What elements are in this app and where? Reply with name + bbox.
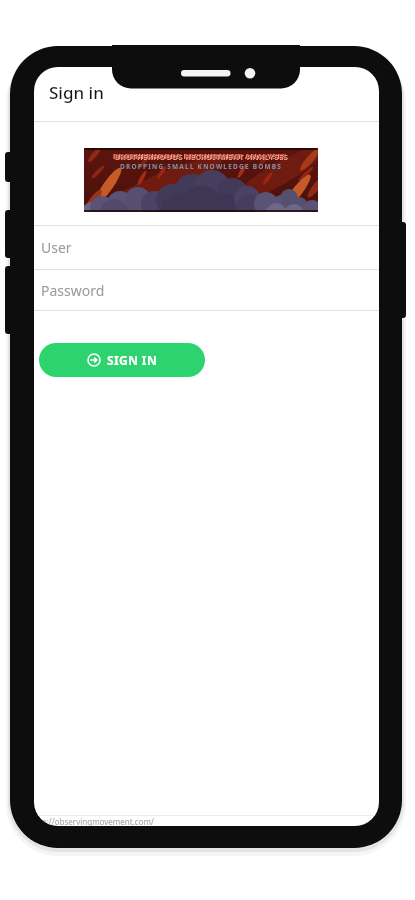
staticText: BROTHERHOODS RECRUITMENT ANALYSES xyxy=(115,152,289,162)
staticText: Sign in xyxy=(49,81,104,104)
button[interactable]: http://observingmovement.com/ xyxy=(34,816,154,826)
staticText: Password xyxy=(41,281,105,300)
button[interactable]: Password xyxy=(34,270,379,310)
staticText: User xyxy=(41,238,72,257)
button[interactable]: SIGN IN xyxy=(39,343,205,377)
button[interactable]: User xyxy=(34,226,379,269)
staticText: BROTHERHOODS RECRUITMENT ANALYSES xyxy=(113,151,287,161)
staticText: DROPPING SMALL KNOWLEDGE BOMBS xyxy=(120,162,283,171)
staticText: SIGN IN xyxy=(107,352,158,368)
button[interactable]: BROTHERHOODS RECRUITMENT ANALYSES xyxy=(84,148,318,212)
staticText: BROTHERHOODS RECRUITMENT ANALYSES xyxy=(114,151,288,161)
